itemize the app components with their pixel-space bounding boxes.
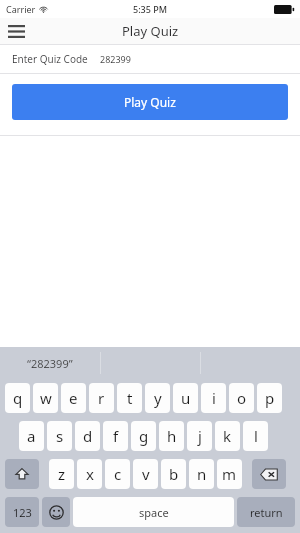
staticText: i [212,388,216,408]
staticText: Carrier [6,3,36,15]
button[interactable]: y [145,383,170,413]
button[interactable]: Emoji [42,497,70,527]
button[interactable]: 123 [5,497,39,527]
button[interactable]: “282399” [0,347,100,379]
staticText: h [167,426,177,446]
staticText: 123 [13,505,32,520]
button[interactable]: Menu [4,19,28,43]
staticText: n [197,464,207,484]
button[interactable]: t [117,383,142,413]
staticText: a [27,426,36,446]
staticText: return [250,505,283,520]
staticText: g [139,426,149,446]
staticText: t [127,388,133,408]
button[interactable]: i [201,383,226,413]
button[interactable]: x [77,459,102,489]
button[interactable]: c [105,459,130,489]
staticText: u [181,388,191,408]
staticText: “282399” [27,356,73,371]
button[interactable]: b [161,459,186,489]
button[interactable]: f [103,421,128,451]
button[interactable]: e [61,383,86,413]
button[interactable]: v [133,459,158,489]
button[interactable]: space [73,497,234,527]
staticText: b [169,464,179,484]
staticText: l [254,426,258,446]
button[interactable]: d [75,421,100,451]
button[interactable]: g [131,421,156,451]
button[interactable]: Backspace [252,459,286,489]
staticText: 5:35 PM [133,3,167,15]
button[interactable]: u [173,383,198,413]
staticText: space [139,505,169,520]
staticText: j [198,426,202,446]
button[interactable]: s [47,421,72,451]
button[interactable]: Play Quiz [12,84,288,120]
button[interactable]: a [19,421,44,451]
staticText: v [142,464,150,484]
staticText: 282399 [100,53,131,65]
button[interactable]: j [187,421,212,451]
button[interactable]: p [257,383,282,413]
staticText: z [58,464,66,484]
staticText: e [69,388,78,408]
button[interactable]: o [229,383,254,413]
staticText: y [154,388,162,408]
button[interactable]: n [189,459,214,489]
staticText: w [40,388,52,408]
staticText: s [56,426,64,446]
button[interactable]: k [215,421,240,451]
staticText: o [237,388,247,408]
staticText: m [222,464,237,484]
button[interactable]: l [243,421,268,451]
staticText: Play Quiz [122,22,179,40]
staticText: f [113,426,119,446]
button[interactable]: return [237,497,295,527]
button[interactable]: Enter Quiz Code [0,45,300,73]
staticText: k [223,426,232,446]
button[interactable]: r [89,383,114,413]
staticText: r [98,388,105,408]
staticText: Enter Quiz Code [12,52,88,66]
staticText: x [86,464,94,484]
button[interactable]: z [49,459,74,489]
staticText: c [114,464,122,484]
staticText: d [83,426,93,446]
staticText: Play Quiz [124,94,176,110]
button[interactable]: Shift [5,459,39,489]
staticText: q [13,388,23,408]
button[interactable]: h [159,421,184,451]
staticText: p [265,388,275,408]
button[interactable]: w [33,383,58,413]
button[interactable]: q [5,383,30,413]
button[interactable]: m [217,459,242,489]
